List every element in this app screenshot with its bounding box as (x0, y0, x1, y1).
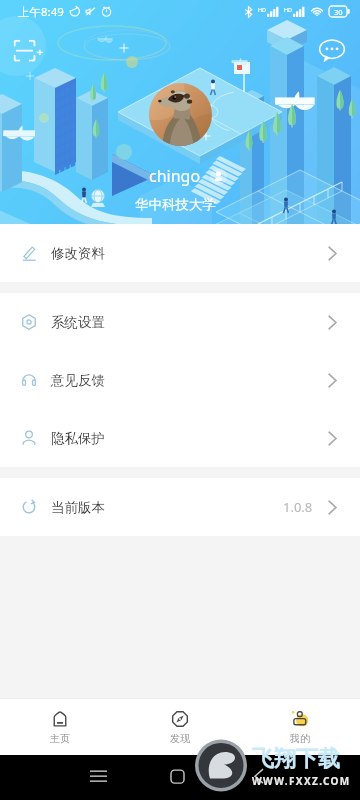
staticText: 隐私保护 (51, 430, 105, 447)
staticText: 1.0.8 (283, 498, 313, 516)
button[interactable]: 意见反馈 (0, 351, 360, 409)
button[interactable]: 主页 (0, 699, 120, 755)
staticText: 我的 (290, 732, 310, 745)
staticText: WWW.FXXZ.COM (252, 774, 351, 788)
button[interactable]: 发现 (120, 699, 240, 755)
button[interactable]: Avatar (149, 83, 212, 146)
button[interactable]: 系统设置 (0, 293, 360, 351)
staticText: 修改资料 (51, 245, 105, 262)
staticText: chingo (149, 165, 201, 187)
staticText: HD (284, 6, 293, 13)
staticText: 华中科技大学 (135, 196, 216, 213)
staticText: HD (258, 6, 267, 13)
staticText: 主页 (50, 732, 70, 745)
button[interactable]: 隐私保护 (0, 409, 360, 467)
button[interactable]: Scan QR code (12, 34, 46, 68)
staticText: 发现 (170, 732, 190, 745)
button[interactable]: 当前版本 (0, 478, 360, 536)
staticText: 系统设置 (51, 314, 105, 331)
staticText: 意见反馈 (51, 372, 105, 389)
staticText: 上午8:49 (18, 4, 64, 20)
staticText: 飞翔下载 (252, 745, 340, 773)
button[interactable]: 我的 (240, 699, 360, 755)
button[interactable]: chingo (149, 165, 227, 187)
staticText: 当前版本 (51, 499, 105, 516)
staticText: 30 (334, 7, 343, 17)
button[interactable]: 修改资料 (0, 224, 360, 282)
button[interactable]: Messages (318, 36, 346, 64)
